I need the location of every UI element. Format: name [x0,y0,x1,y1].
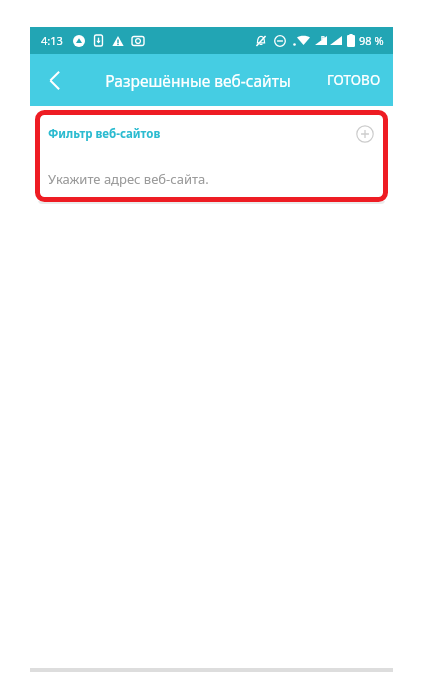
button[interactable]: Фильтр веб-сайтов [35,111,388,157]
staticText: Укажите адрес веб-сайта. [48,170,209,188]
staticText: 4:13 [41,33,63,48]
staticText: 98 % [359,33,384,48]
staticText: Фильтр веб-сайтов [48,126,161,142]
staticText: Разрешённые веб-сайты [105,70,291,91]
button[interactable]: ГОТОВО [315,54,393,106]
button[interactable]: Укажите адрес веб-сайта. [35,157,388,201]
button[interactable]: Add website [354,123,376,145]
staticText: R [321,34,325,42]
button[interactable]: Back [30,56,78,104]
staticText: ГОТОВО [327,71,381,89]
